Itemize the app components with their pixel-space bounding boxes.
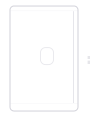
button[interactable]: More <box>66 6 78 11</box>
button[interactable]: Search <box>33 104 55 111</box>
button[interactable]: Profile <box>55 104 78 111</box>
button[interactable]: Home <box>10 104 33 111</box>
button[interactable]: Back <box>10 6 22 11</box>
